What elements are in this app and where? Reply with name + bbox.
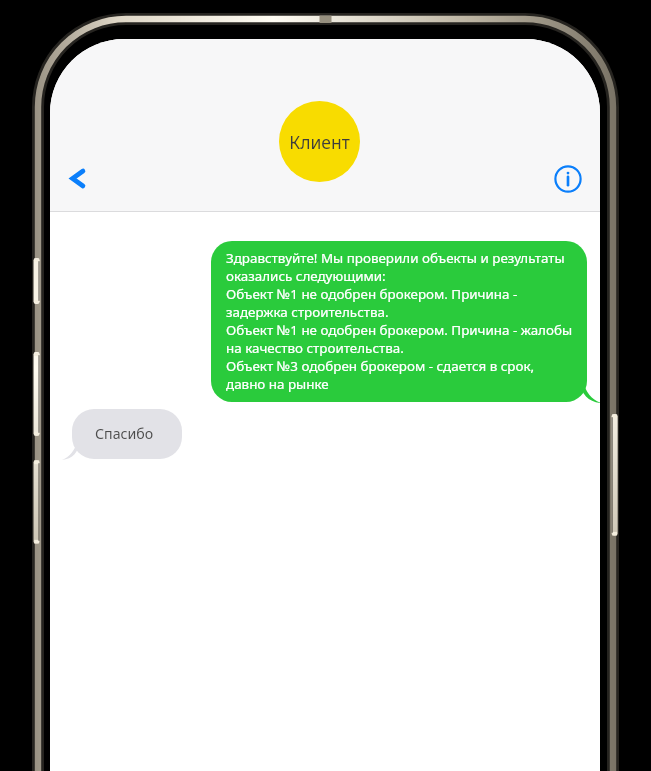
staticText: Спасибо xyxy=(95,424,154,443)
button[interactable]: Клиент xyxy=(279,101,360,182)
button[interactable]: Спасибо xyxy=(72,409,182,459)
button[interactable]: Back xyxy=(55,155,101,201)
button[interactable]: Info xyxy=(546,157,590,201)
button[interactable]: Здравствуйте! Мы проверили объекты и рез… xyxy=(211,241,587,402)
staticText: Клиент xyxy=(289,130,350,154)
staticText: Здравствуйте! Мы проверили объекты и рез… xyxy=(226,249,573,393)
